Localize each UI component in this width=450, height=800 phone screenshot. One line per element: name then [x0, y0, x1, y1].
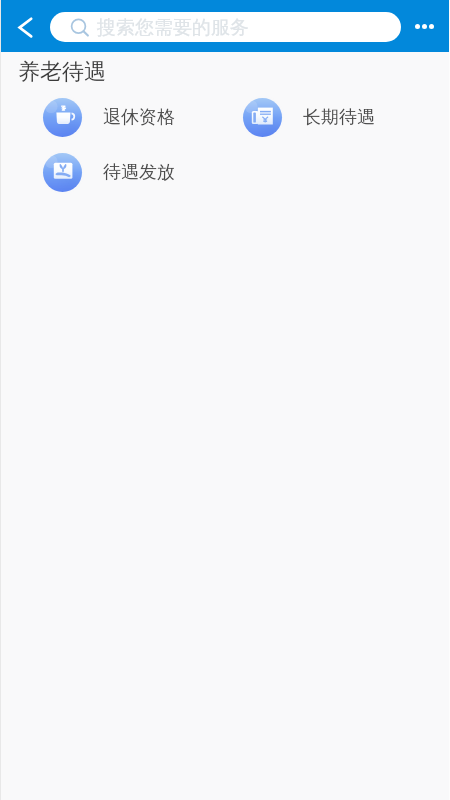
button[interactable]: 搜索您需要的服务	[50, 12, 401, 42]
staticText: 待遇发放	[103, 161, 175, 184]
button[interactable]: 更多	[415, 0, 441, 52]
button[interactable]: 退休资格	[14, 90, 214, 145]
staticText: 搜索您需要的服务	[97, 16, 249, 40]
staticText: 退休资格	[103, 106, 175, 129]
button[interactable]: 长期待遇	[214, 90, 414, 145]
staticText: 长期待遇	[303, 106, 375, 129]
staticText: 养老待遇	[18, 58, 106, 86]
button[interactable]: 返回	[0, 0, 52, 52]
button[interactable]: 待遇发放	[14, 145, 214, 200]
